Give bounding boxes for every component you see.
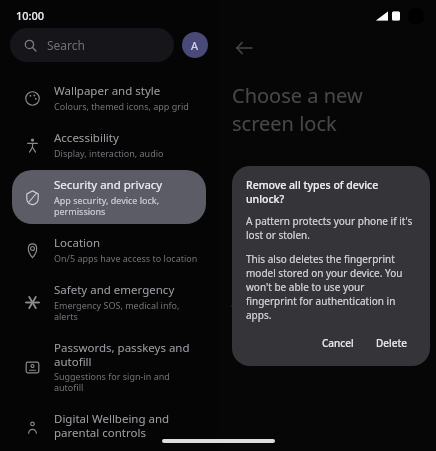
staticText: Suggestions for sign-in and autofill — [54, 370, 198, 393]
staticText: Accessibility — [54, 130, 119, 146]
staticText: Colours, themed icons, app grid — [54, 100, 189, 112]
staticText: 10:00 — [16, 8, 45, 23]
staticText: Search — [47, 37, 85, 53]
staticText: Password — [256, 294, 315, 312]
button[interactable]: Security and privacy — [12, 170, 206, 224]
button[interactable]: Safety and emergency — [12, 275, 206, 329]
staticText: Digital Wellbeing and parental controls — [54, 411, 198, 440]
staticText: 10:00 — [16, 8, 45, 23]
staticText: Colours, themed icons, app grid — [54, 100, 189, 112]
staticText: Delete — [376, 336, 408, 350]
button[interactable]: Search — [10, 28, 174, 62]
staticText: Screen time, app timers, bedtime schedul… — [54, 441, 198, 442]
button[interactable]: Pattern — [218, 223, 436, 255]
staticText: On/5 apps have access to location — [54, 252, 198, 264]
staticText: Safety and emergency — [54, 282, 175, 298]
button[interactable]: Digital Wellbeing and parental controls — [12, 404, 206, 449]
staticText: Emergency SOS, medical info, alerts — [54, 299, 198, 322]
staticText: PIN — [256, 262, 279, 280]
staticText: Location — [54, 235, 101, 251]
button[interactable]: Search — [10, 28, 174, 62]
button[interactable]: Accessibility — [12, 123, 206, 166]
staticText: On/5 apps have access to location — [54, 252, 198, 264]
staticText: Emergency SOS, medical info, alerts — [54, 299, 198, 322]
staticText: Digital Wellbeing and parental controls — [54, 411, 198, 440]
button[interactable]: Account — [182, 32, 208, 58]
staticText: Security and privacy — [54, 177, 163, 193]
staticText: Display, interaction, audio — [54, 147, 164, 159]
button[interactable]: Password — [218, 287, 436, 319]
staticText: Location — [54, 235, 101, 251]
button[interactable]: Security and privacy — [12, 170, 206, 224]
button[interactable]: Passwords, passkeys and autofill — [12, 333, 206, 400]
button[interactable]: Accessibility — [12, 123, 206, 166]
staticText: Choose a new screen lock — [232, 82, 426, 137]
button[interactable]: Passwords, passkeys and autofill — [12, 333, 206, 400]
button[interactable]: Delete — [368, 332, 416, 354]
staticText: Passwords, passkeys and autofill — [54, 340, 198, 369]
button[interactable]: Wallpaper and style — [12, 76, 206, 119]
staticText: App security, device lock, permissions — [54, 194, 198, 217]
staticText: Security and privacy — [54, 177, 163, 193]
staticText: Wallpaper and style — [54, 83, 161, 99]
staticText: Cancel — [322, 336, 354, 350]
staticText: App security, device lock, permissions — [54, 194, 198, 217]
staticText: A — [191, 38, 199, 53]
staticText: A pattern protects your phone if it's lo… — [246, 214, 416, 242]
button[interactable]: Account — [182, 32, 208, 58]
staticText: Passwords, passkeys and autofill — [54, 340, 198, 369]
button[interactable]: Location — [12, 228, 206, 271]
button[interactable]: PIN — [218, 255, 436, 287]
button[interactable]: Back — [226, 30, 262, 66]
staticText: Remove all types of device unlock? — [246, 178, 416, 206]
staticText: A — [191, 38, 199, 53]
button[interactable]: Cancel — [314, 332, 362, 354]
button[interactable]: Wallpaper and style — [12, 76, 206, 119]
staticText: Pattern — [256, 230, 302, 248]
staticText: Screen time, app timers, bedtime schedul… — [54, 441, 198, 442]
staticText: Accessibility — [54, 130, 119, 146]
button[interactable]: Digital Wellbeing and parental controls — [12, 404, 206, 449]
staticText: Display, interaction, audio — [54, 147, 164, 159]
staticText: Safety and emergency — [54, 282, 175, 298]
staticText: Search — [47, 37, 85, 53]
button[interactable]: Safety and emergency — [12, 275, 206, 329]
staticText: This also deletes the fingerprint model … — [246, 252, 416, 322]
button[interactable]: Location — [12, 228, 206, 271]
staticText: Wallpaper and style — [54, 83, 161, 99]
staticText: Suggestions for sign-in and autofill — [54, 370, 198, 393]
